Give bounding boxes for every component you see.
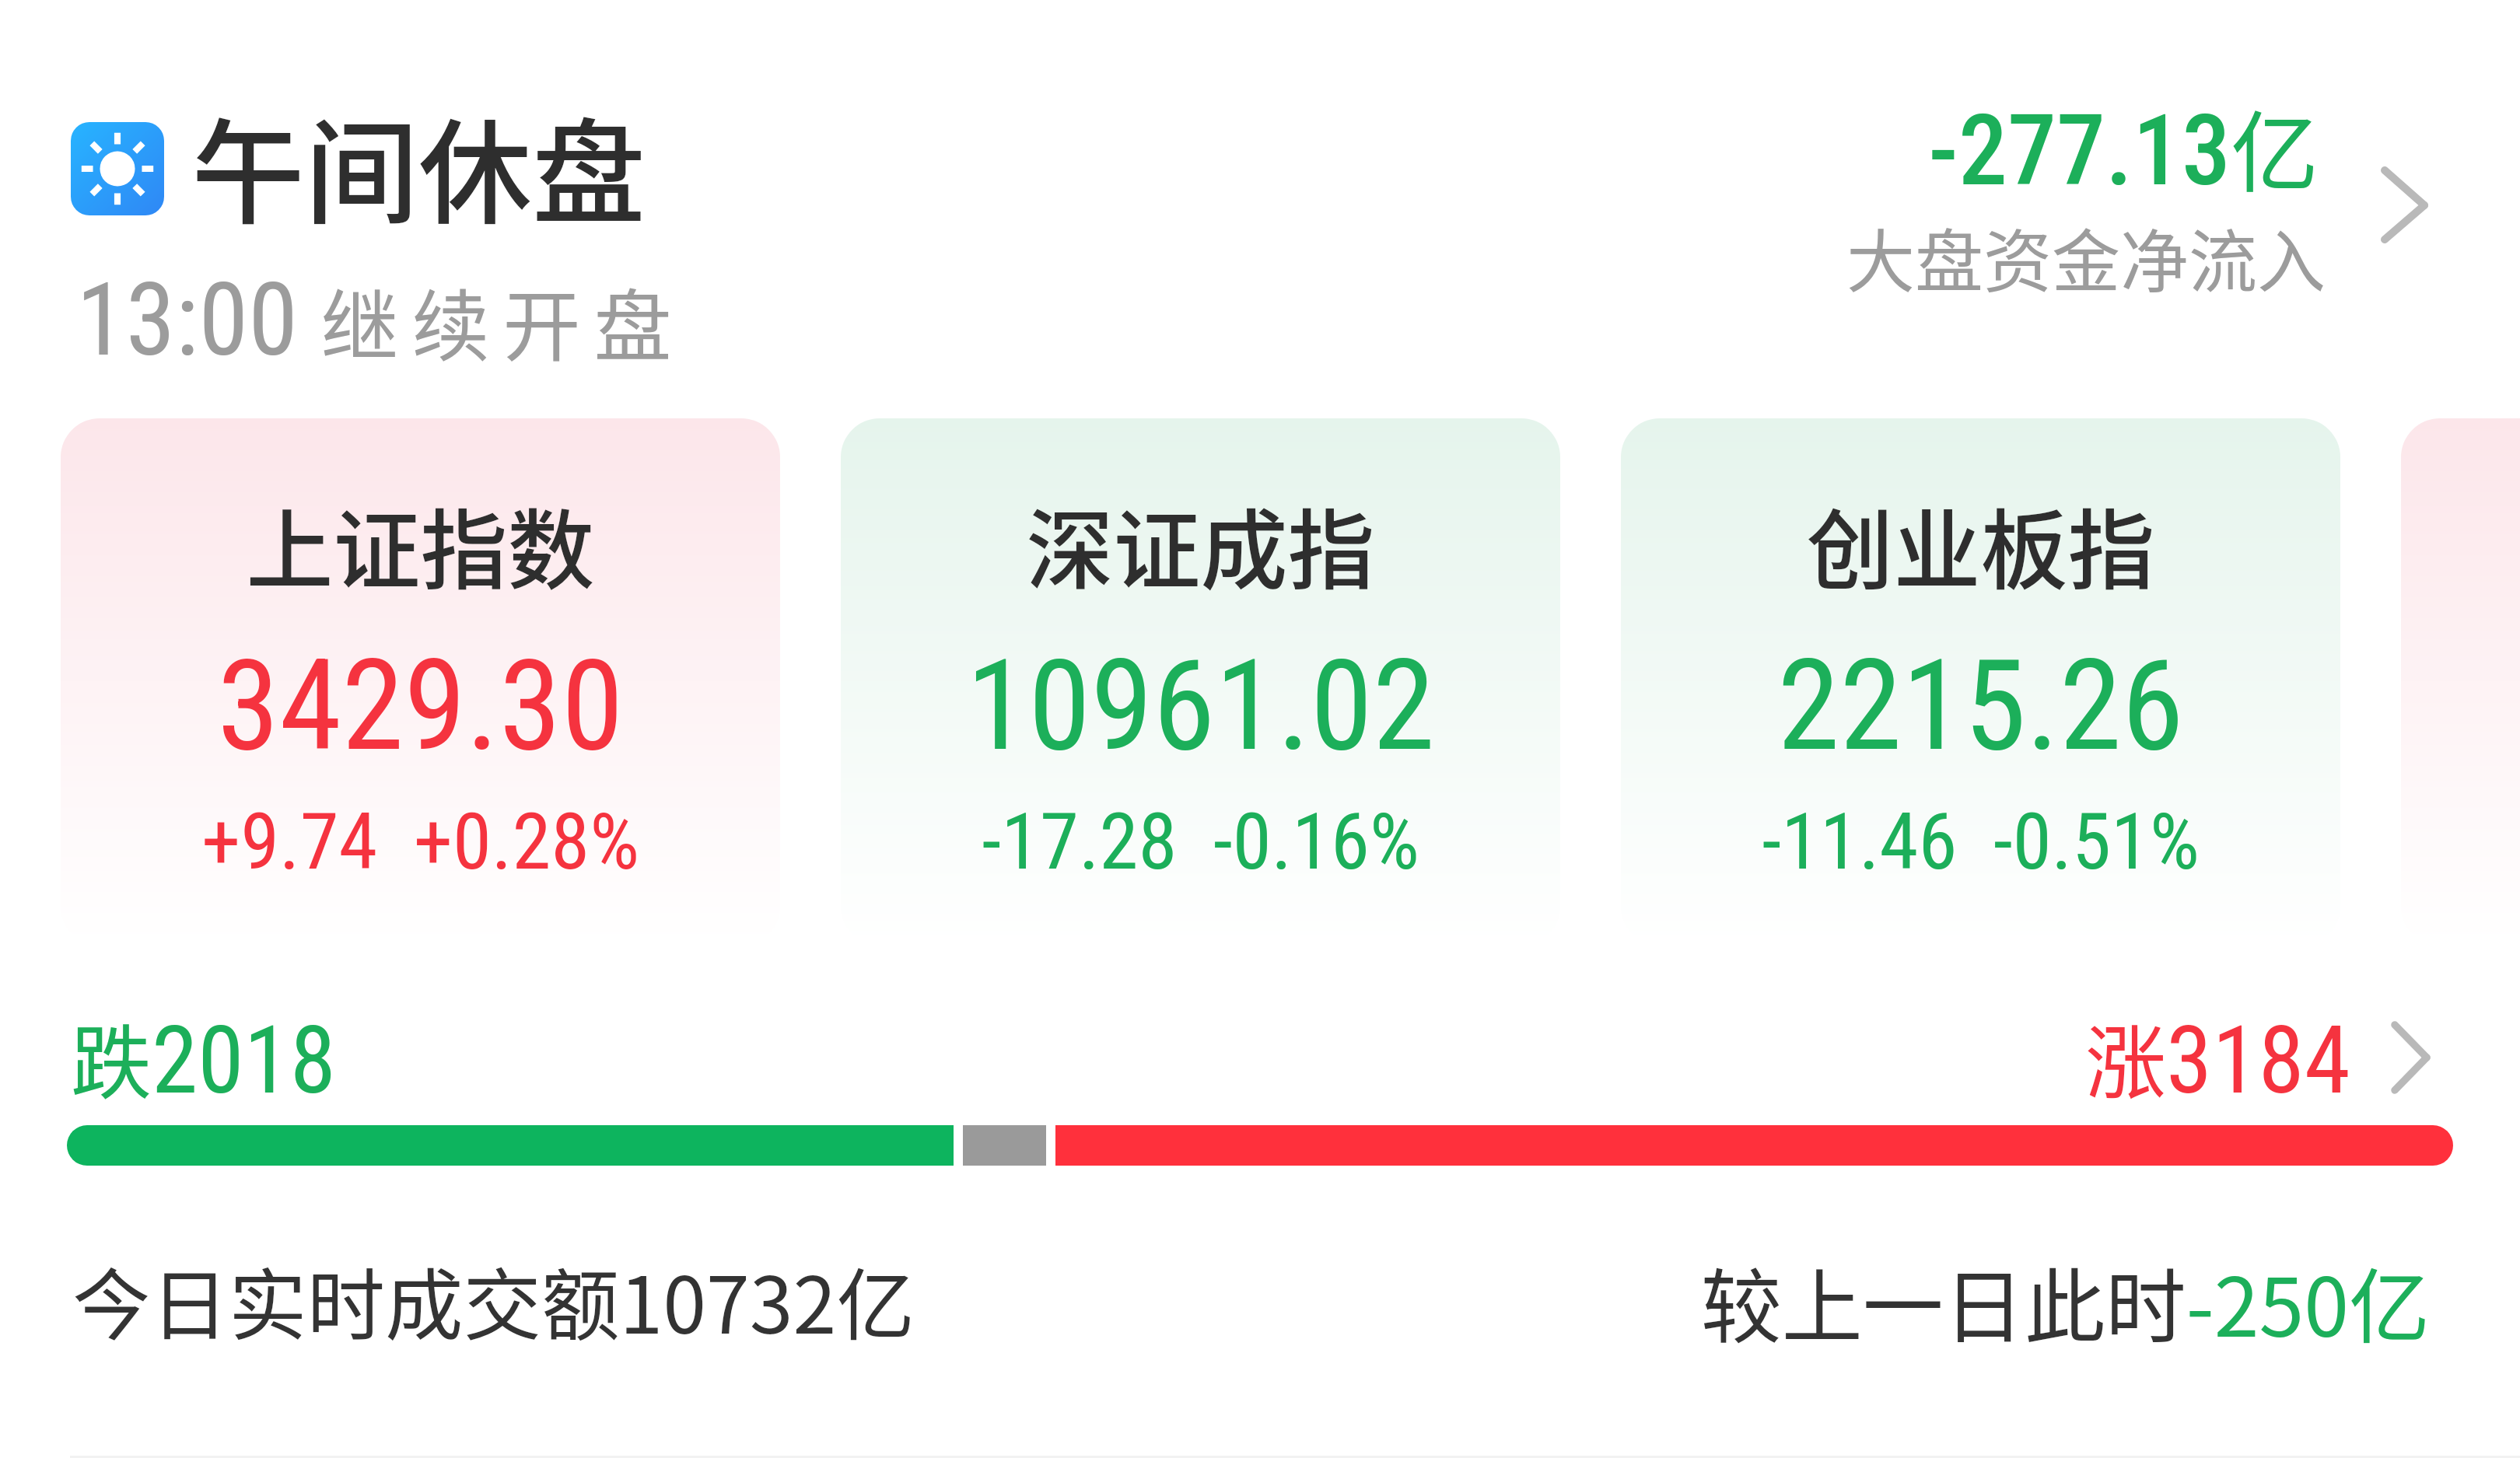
button[interactable]: Capital flow details — [2357, 140, 2489, 272]
staticText: -277.13亿 — [1633, 82, 2319, 210]
staticText: 跌2018 — [71, 998, 336, 1116]
button[interactable]: 创业板指 — [1621, 418, 2340, 945]
button[interactable]: 北证50 — [2401, 418, 2520, 945]
staticText: 午间休盘 — [191, 82, 646, 246]
staticText: 今日实时成交额10732亿 — [72, 1243, 915, 1356]
staticText: 上证指数 — [61, 481, 780, 607]
staticText: 3429.30 — [61, 632, 780, 780]
staticText: -17.28 -0.16% — [841, 795, 1560, 887]
staticText: 2215.26 — [1621, 632, 2340, 780]
button[interactable]: 上证指数 — [61, 418, 780, 945]
staticText: 大盘资金净流入 — [1633, 207, 2326, 306]
staticText: 涨3184 — [2085, 998, 2350, 1116]
staticText: +9.74 +0.28% — [61, 795, 780, 887]
staticText: -11.46 -0.51% — [1621, 795, 2340, 887]
staticText: 10961.02 — [841, 632, 1560, 780]
button[interactable]: Midday break — [71, 122, 164, 215]
staticText: 深证成指 — [841, 481, 1560, 607]
staticText: 13:00 继续开盘 — [76, 261, 685, 379]
button[interactable]: 跌2018 — [0, 989, 2520, 1125]
staticText: 较上一日此时-250亿 — [1633, 1243, 2430, 1360]
staticText: 创业板指 — [1621, 481, 2340, 607]
button[interactable]: 深证成指 — [841, 418, 1560, 945]
